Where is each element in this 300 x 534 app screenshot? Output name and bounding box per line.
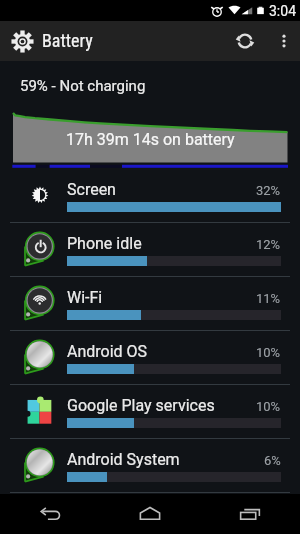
staticText: 3:04 <box>269 3 296 19</box>
button[interactable]: Android OS <box>0 331 300 385</box>
button[interactable]: Phone idle <box>0 223 300 277</box>
staticText: Wi-Fi <box>67 288 256 307</box>
staticText: Android System <box>67 450 264 469</box>
button[interactable]: Back <box>0 494 100 534</box>
staticText: 10% <box>256 345 281 360</box>
staticText: Android OS <box>67 342 256 361</box>
button[interactable]: Home <box>100 494 200 534</box>
staticText: 17h 39m 14s on battery <box>66 130 235 149</box>
button[interactable]: Battery <box>0 21 222 61</box>
staticText: 32% <box>256 183 281 198</box>
button[interactable]: Screen <box>0 169 300 223</box>
staticText: 59% - Not charging <box>20 77 146 95</box>
staticText: Google Play services <box>67 396 256 415</box>
staticText: 6% <box>264 453 281 468</box>
button[interactable]: Recent apps <box>200 494 300 534</box>
staticText: 12% <box>256 237 281 252</box>
staticText: 11% <box>256 291 281 306</box>
staticText: Phone idle <box>67 234 256 253</box>
staticText: Screen <box>67 180 256 199</box>
button[interactable]: More options <box>268 21 300 61</box>
staticText: 10% <box>256 399 281 414</box>
button[interactable]: Google Play services <box>0 385 300 439</box>
button[interactable]: Refresh <box>222 21 268 61</box>
button[interactable]: Android System <box>0 439 300 493</box>
staticText: Battery <box>42 30 93 51</box>
button[interactable]: Wi-Fi <box>0 277 300 331</box>
